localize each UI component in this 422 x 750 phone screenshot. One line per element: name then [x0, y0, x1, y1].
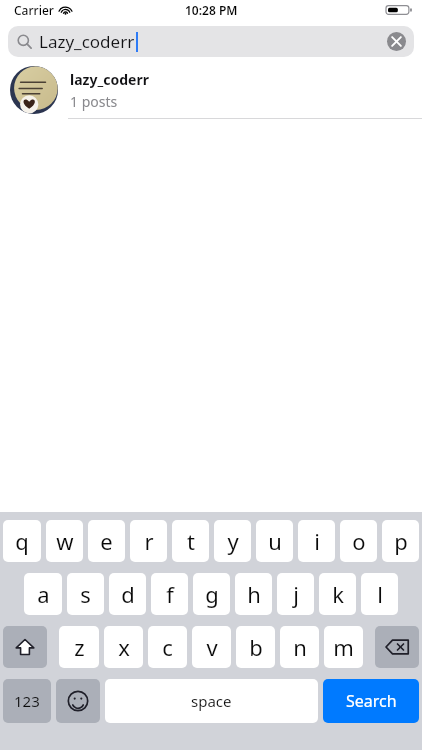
button[interactable]: k: [319, 573, 356, 615]
button[interactable]: f: [151, 573, 188, 615]
staticText: 123: [14, 691, 40, 711]
button[interactable]: p: [382, 520, 419, 562]
staticText: Lazy_coderr: [39, 30, 135, 53]
staticText: o: [352, 526, 366, 556]
button[interactable]: j: [277, 573, 314, 615]
button[interactable]: x: [104, 626, 143, 668]
button[interactable]: m: [324, 626, 363, 668]
button[interactable]: y: [214, 520, 251, 562]
button[interactable]: Emoji: [56, 679, 100, 723]
button[interactable]: g: [193, 573, 230, 615]
button[interactable]: s: [67, 573, 104, 615]
staticText: v: [206, 632, 218, 662]
staticText: j: [293, 579, 299, 609]
button[interactable]: 123: [3, 679, 51, 723]
staticText: space: [191, 691, 232, 711]
staticText: s: [80, 579, 91, 609]
staticText: Search: [346, 690, 397, 712]
staticText: u: [268, 526, 282, 556]
button[interactable]: i: [298, 520, 335, 562]
staticText: Carrier: [14, 2, 54, 18]
button[interactable]: u: [256, 520, 293, 562]
staticText: g: [205, 579, 219, 609]
staticText: x: [118, 632, 130, 662]
staticText: p: [394, 526, 408, 556]
button[interactable]: e: [88, 520, 125, 562]
staticText: l: [377, 579, 383, 609]
staticText: r: [144, 526, 154, 556]
button[interactable]: Search: [323, 679, 419, 723]
button[interactable]: Clear text: [387, 32, 406, 51]
button[interactable]: v: [192, 626, 231, 668]
button[interactable]: d: [109, 573, 146, 615]
staticText: q: [15, 526, 29, 556]
staticText: e: [100, 526, 113, 556]
staticText: f: [166, 579, 174, 609]
button[interactable]: Shift: [3, 626, 47, 668]
button[interactable]: o: [340, 520, 377, 562]
button[interactable]: Backspace: [375, 626, 419, 668]
button[interactable]: space: [105, 679, 318, 723]
button[interactable]: n: [280, 626, 319, 668]
button[interactable]: b: [236, 626, 275, 668]
staticText: w: [56, 526, 74, 556]
staticText: k: [332, 579, 344, 609]
button[interactable]: r: [130, 520, 167, 562]
staticText: c: [162, 632, 173, 662]
button[interactable]: q: [3, 520, 41, 562]
staticText: lazy_coderr: [70, 70, 149, 89]
staticText: n: [293, 632, 307, 662]
staticText: a: [37, 579, 50, 609]
staticText: h: [247, 579, 261, 609]
button[interactable]: t: [172, 520, 209, 562]
button[interactable]: a: [24, 573, 62, 615]
staticText: t: [187, 526, 195, 556]
button[interactable]: h: [235, 573, 272, 615]
staticText: m: [333, 632, 354, 662]
staticText: y: [227, 526, 239, 556]
button[interactable]: Lazy_coderr: [8, 26, 414, 57]
staticText: i: [314, 526, 320, 556]
staticText: 1 posts: [70, 92, 118, 111]
button[interactable]: z: [59, 626, 99, 668]
button[interactable]: l: [361, 573, 398, 615]
staticText: b: [249, 632, 263, 662]
button[interactable]: c: [148, 626, 187, 668]
button[interactable]: w: [46, 520, 83, 562]
staticText: 10:28 PM: [185, 2, 238, 18]
button[interactable]: lazy_coderr: [0, 62, 422, 119]
staticText: d: [121, 579, 135, 609]
staticText: z: [74, 632, 85, 662]
